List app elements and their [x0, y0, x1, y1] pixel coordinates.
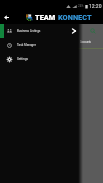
staticText: Settings	[17, 57, 28, 61]
staticText: KONNECT	[58, 13, 92, 22]
button[interactable]: Navigate up	[1, 12, 12, 23]
staticText: TEAM	[35, 13, 56, 22]
button[interactable]: Close drawer	[70, 27, 78, 35]
button[interactable]: Task Manager	[0, 38, 78, 52]
staticText: 24%	[78, 4, 84, 8]
staticText: Accounts	[80, 41, 91, 44]
button[interactable]: Business Listings	[0, 24, 78, 38]
button[interactable]: Settings	[0, 52, 78, 66]
staticText: Business Listings	[17, 29, 41, 33]
staticText: Task Manager	[17, 43, 36, 47]
staticText: 12:20	[89, 3, 102, 9]
button[interactable]: Search	[90, 28, 96, 34]
